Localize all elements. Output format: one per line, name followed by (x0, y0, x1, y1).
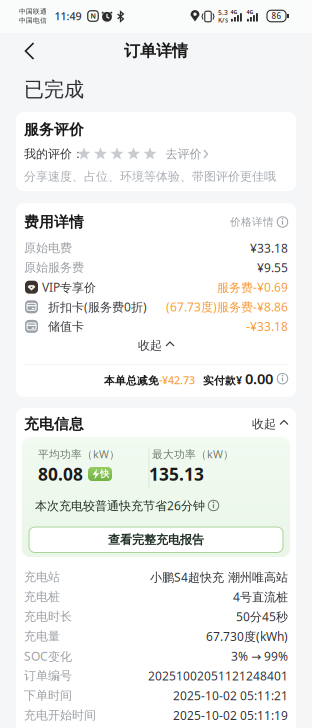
staticText: 储值卡 (24, 319, 84, 334)
button[interactable]: 价格详情 (230, 215, 296, 228)
staticText: 135.13 (149, 462, 204, 485)
staticText: 价格详情 (230, 215, 274, 228)
staticText: 原始服务费 (24, 260, 84, 275)
staticText: 原始电费 (24, 241, 72, 255)
staticText: 3% → 99% (231, 648, 288, 664)
staticText: K/s (218, 16, 228, 24)
staticText: 充电桩 (24, 589, 60, 604)
staticText: 5.3 (218, 8, 228, 17)
staticText: 中国电信 (19, 16, 47, 25)
staticText: 4G (246, 8, 253, 16)
button[interactable]: 实付款说明 (277, 373, 288, 384)
staticText: 实付款¥ (203, 373, 242, 387)
staticText: 2025-10-02 05:11:19 (173, 707, 288, 723)
staticText: ¥33.18 (250, 240, 288, 256)
staticText: 中国联通 (19, 7, 47, 16)
staticText: 充电信息 (24, 415, 84, 433)
staticText: -¥33.18 (246, 318, 288, 334)
staticText: 20251002051121248401 (148, 668, 288, 684)
staticText: 4号直流桩 (233, 589, 288, 605)
staticText: 本次充电较普通快充节省26分钟 (35, 497, 205, 513)
staticText: 收起 (252, 417, 276, 431)
staticText: 86 (271, 11, 281, 21)
staticText: 11:49 (54, 9, 81, 23)
staticText: 67.730度(kWh) (206, 628, 288, 644)
staticText: 服务评价 (24, 120, 84, 138)
staticText: N (90, 12, 95, 20)
staticText: 2025-10-02 05:11:21 (173, 687, 288, 703)
staticText: 最大功率（kW） (152, 447, 234, 461)
staticText: 服务费-¥0.69 (217, 279, 288, 295)
button[interactable]: 收起 (252, 417, 296, 431)
staticText: 4G (230, 8, 237, 16)
staticText: 本单总减免 (104, 374, 159, 387)
staticText: 订单详情 (124, 41, 188, 61)
staticText: 我的评价： (24, 147, 84, 161)
button[interactable]: 返回 (25, 43, 34, 59)
staticText: 充电时长 (24, 609, 72, 624)
staticText: 折扣卡(服务费0折) (24, 299, 147, 315)
staticText: 分享速度、占位、环境等体验、带图评价更佳哦 (24, 169, 276, 184)
staticText: -¥42.73 (159, 373, 195, 387)
staticText: 收起 (138, 338, 162, 353)
staticText: 50分45秒 (236, 608, 288, 624)
button[interactable]: 节省时间说明 (208, 500, 219, 511)
staticText: 充电开始时间 (24, 708, 96, 723)
staticText: 平均功率（kW） (38, 447, 120, 461)
staticText: 去评价 (165, 147, 201, 161)
staticText: 下单时间 (24, 688, 72, 703)
staticText: 已完成 (24, 77, 84, 102)
staticText: 小鹏S4超快充 潮州唯高站 (150, 569, 288, 585)
button[interactable]: 我的评价： (16, 112, 296, 168)
staticText: (67.73度)服务费-¥8.86 (166, 299, 288, 315)
staticText: VIP专享价 (24, 279, 96, 295)
staticText: 查看完整充电报告 (108, 532, 204, 547)
staticText: 订单编号 (24, 668, 72, 683)
staticText: 0.00 (245, 369, 273, 388)
staticText: 充电量 (24, 629, 60, 644)
staticText: 80.08 (38, 462, 83, 485)
staticText: 快 (100, 468, 109, 480)
button[interactable]: 收起 (138, 338, 174, 353)
staticText: SOC变化 (24, 648, 72, 664)
button[interactable]: 查看完整充电报告 (29, 527, 283, 552)
staticText: 费用详情 (24, 213, 84, 231)
staticText: ¥9.55 (257, 260, 288, 275)
staticText: 充电站 (24, 570, 60, 584)
